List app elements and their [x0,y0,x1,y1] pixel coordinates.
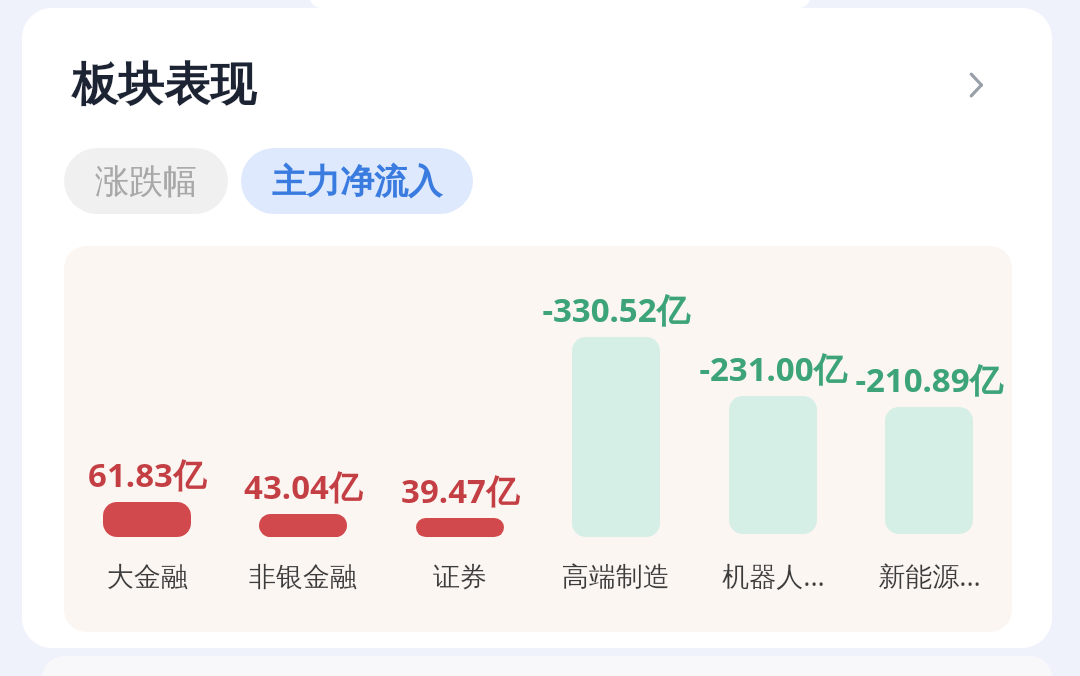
staticText: 涨跌幅 [95,160,197,203]
button[interactable]: 主力净流入 [241,148,473,214]
button[interactable]: -231.00亿 [699,246,847,632]
button[interactable]: 39.47亿 [386,246,534,632]
other: 查看更多 [950,59,1002,111]
staticText: 主力净流入 [272,160,442,203]
staticText: 机器人... [722,557,825,594]
staticText: 39.47亿 [401,468,519,513]
button[interactable]: 61.83亿 [73,246,221,632]
staticText: 61.83亿 [88,452,206,497]
staticText: -330.52亿 [542,287,690,332]
staticText: 证券 [433,560,487,594]
staticText: 高端制造 [562,560,670,594]
staticText: 非银金融 [249,560,357,594]
staticText: -210.89亿 [855,357,1003,402]
staticText: -231.00亿 [699,346,847,391]
button[interactable]: -210.89亿 [855,246,1003,632]
staticText: 板块表现 [72,56,256,114]
button[interactable]: 43.04亿 [229,246,377,632]
staticText: 43.04亿 [244,464,362,509]
staticText: 大金融 [107,560,188,594]
button[interactable]: 涨跌幅 [64,148,228,214]
staticText: 新能源... [878,557,981,594]
button[interactable]: -330.52亿 [542,246,690,632]
button[interactable]: 板块表现 [72,52,1002,118]
